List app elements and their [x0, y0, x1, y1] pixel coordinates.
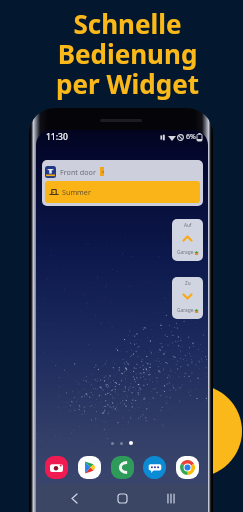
button[interactable]: Home: [111, 487, 133, 509]
staticText: 6%: [186, 132, 196, 142]
staticText: 11:30: [46, 131, 68, 143]
button[interactable]: Auf: [172, 219, 203, 261]
button[interactable]: Back: [63, 487, 85, 509]
button[interactable]: Phone: [111, 456, 134, 479]
staticText: Garage: [177, 307, 194, 314]
button[interactable]: Recents: [160, 487, 182, 509]
button[interactable]: Chrome: [176, 456, 199, 479]
staticText: Summer: [62, 187, 91, 197]
staticText: Front door: [60, 167, 96, 177]
button[interactable]: Play Store: [78, 456, 101, 479]
staticText: Auf: [184, 222, 192, 228]
staticText: Garage: [177, 249, 194, 256]
staticText: Schnelle Bedienung per Widget: [56, 6, 199, 101]
button[interactable]: Camera: [45, 456, 68, 479]
staticText: Zu: [185, 280, 191, 286]
button[interactable]: Zu: [172, 277, 203, 319]
button[interactable]: Front door: [42, 160, 203, 206]
button[interactable]: Summer: [45, 181, 200, 203]
button[interactable]: Messages: [143, 456, 166, 479]
